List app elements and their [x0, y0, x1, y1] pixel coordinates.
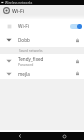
button[interactable]: mejla [0, 68, 84, 79]
staticText: Wireless networks [5, 1, 33, 5]
button[interactable]: Back [0, 132, 39, 140]
button[interactable]: Recent apps [45, 132, 84, 140]
button[interactable]: Back [0, 5, 12, 16]
staticText: Saved networks [19, 49, 43, 53]
staticText: mejla [18, 71, 30, 77]
staticText: Wi-Fi [12, 7, 25, 14]
staticText: Wi-Fi [18, 23, 29, 30]
button[interactable]: Tendy_fixed [0, 54, 84, 68]
button[interactable]: Wi-Fi [0, 19, 84, 33]
staticText: Tendy_fixed [18, 56, 44, 62]
staticText: Password [18, 62, 34, 67]
staticText: Dobb [18, 37, 30, 43]
button[interactable]: Dobb [0, 33, 84, 47]
